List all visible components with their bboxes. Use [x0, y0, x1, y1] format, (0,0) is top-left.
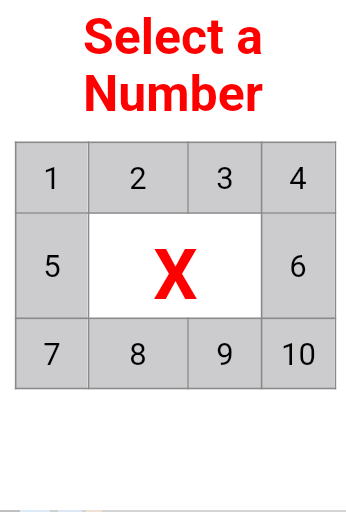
staticText: 2 [129, 160, 147, 196]
button[interactable]: 5 [16, 214, 87, 318]
staticText: 10 [281, 336, 316, 372]
button[interactable]: 1 [16, 143, 87, 212]
staticText: X [153, 234, 198, 316]
staticText: Select a Number [0, 8, 346, 123]
button[interactable]: 3 [189, 143, 261, 212]
staticText: 3 [216, 160, 234, 196]
button[interactable]: 10 [262, 319, 334, 388]
staticText: 4 [289, 160, 307, 196]
button[interactable]: 2 [89, 143, 187, 212]
staticText: 7 [43, 336, 61, 372]
button[interactable]: 8 [89, 319, 187, 388]
staticText: 9 [216, 336, 234, 372]
staticText: 8 [129, 336, 147, 372]
button[interactable]: Cancel [89, 214, 261, 318]
staticText: 1 [43, 160, 61, 196]
button[interactable]: 4 [262, 143, 334, 212]
button[interactable]: 9 [189, 319, 261, 388]
staticText: 6 [289, 248, 307, 284]
button[interactable]: 6 [262, 214, 334, 318]
button[interactable]: 7 [16, 319, 87, 388]
staticText: 5 [43, 248, 61, 284]
